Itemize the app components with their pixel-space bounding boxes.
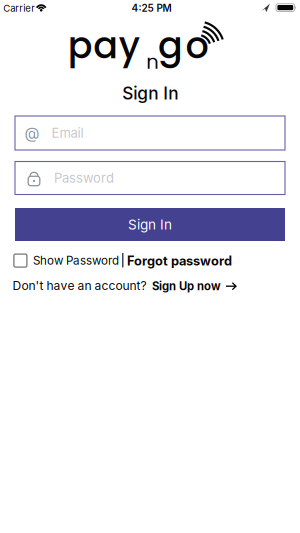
- staticText: 4:25 PM: [131, 2, 171, 14]
- staticText: Forgot password: [127, 253, 232, 269]
- staticText: @: [24, 124, 39, 142]
- staticText: n: [146, 48, 158, 76]
- staticText: pay: [68, 20, 140, 71]
- button[interactable]: Sign In: [15, 208, 285, 241]
- button[interactable]: Password: [15, 161, 285, 194]
- button[interactable]: Forgot password: [127, 253, 232, 269]
- button[interactable]: Show Password: [14, 254, 119, 268]
- staticText: Carrier: [3, 2, 35, 14]
- staticText: Password: [54, 170, 114, 186]
- staticText: go: [158, 20, 209, 71]
- staticText: Sign In: [128, 216, 172, 233]
- staticText: Email: [51, 125, 83, 141]
- staticText: Don't have an account?: [13, 278, 147, 293]
- button[interactable]: Sign Up now: [152, 279, 237, 293]
- button[interactable]: @: [15, 116, 285, 150]
- staticText: Sign In: [122, 83, 178, 104]
- staticText: Sign Up now: [152, 279, 221, 293]
- staticText: Show Password: [33, 254, 119, 268]
